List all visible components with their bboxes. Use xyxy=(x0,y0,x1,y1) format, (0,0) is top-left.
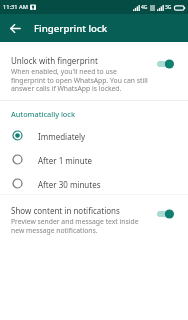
staticText: 11:31 AM xyxy=(3,3,28,11)
button[interactable]: After 1 minute xyxy=(0,147,188,171)
button[interactable]: Toggle xyxy=(157,59,173,69)
button[interactable]: Show content in notifications xyxy=(0,205,188,235)
button[interactable]: Back xyxy=(2,15,28,41)
button[interactable]: After 30 minutes xyxy=(0,171,188,195)
staticText: After 1 minute xyxy=(38,155,93,166)
button[interactable]: Toggle xyxy=(157,209,173,219)
staticText: When enabled, you'll need to use fingerp… xyxy=(11,67,148,93)
staticText: Immediately xyxy=(38,131,86,142)
staticText: Show content in notifications xyxy=(11,205,120,216)
button[interactable]: Unlock with fingerprint xyxy=(0,55,188,93)
staticText: Automatically lock xyxy=(11,109,75,119)
staticText: 3G xyxy=(165,4,172,11)
button[interactable]: Immediately xyxy=(0,123,188,147)
staticText: After 30 minutes xyxy=(38,179,101,190)
staticText: Unlock with fingerprint xyxy=(11,55,98,66)
staticText: Fingerprint lock xyxy=(34,22,108,35)
staticText: 4G xyxy=(141,4,148,11)
staticText: Preview sender and message text inside n… xyxy=(11,217,139,235)
